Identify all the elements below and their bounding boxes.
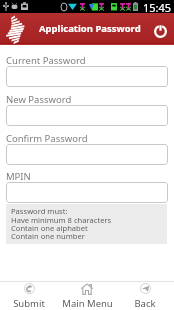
staticText: Main Menu — [62, 297, 113, 310]
button[interactable]: Main Menu — [58, 282, 116, 310]
button[interactable]: New Password — [6, 105, 168, 126]
staticText: MPIN — [6, 170, 31, 183]
staticText: Contain one alphabet — [11, 223, 88, 233]
staticText: Application Password — [39, 22, 141, 35]
staticText: 15:45 — [143, 0, 172, 13]
button[interactable]: Current Password — [6, 66, 168, 87]
staticText: Password must: — [11, 206, 68, 216]
button[interactable]: Confirm Password — [6, 144, 168, 165]
button[interactable]: MPIN — [6, 182, 168, 203]
button[interactable]: Back — [116, 282, 174, 310]
button[interactable]: Power / Logout — [149, 20, 172, 43]
staticText: New Password — [6, 93, 72, 106]
staticText: Confirm Password — [6, 132, 88, 145]
staticText: Back — [134, 297, 156, 310]
staticText: Contain one number — [11, 231, 85, 241]
staticText: Current Password — [6, 54, 86, 67]
button[interactable]: Submit — [0, 282, 58, 310]
staticText: Have minimum 8 characters — [11, 215, 112, 225]
staticText: Submit — [13, 297, 45, 310]
